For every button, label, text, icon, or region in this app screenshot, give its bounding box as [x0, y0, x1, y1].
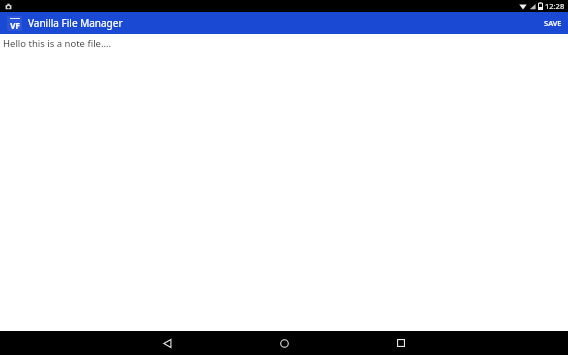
- button[interactable]: SAVE: [538, 12, 568, 34]
- staticText: Vanilla File Manager: [28, 16, 123, 30]
- staticText: VF: [10, 20, 20, 31]
- staticText: SAVE: [544, 18, 562, 28]
- button[interactable]: App icon: [7, 16, 22, 31]
- staticText: Hello this is a note file....: [3, 37, 112, 50]
- staticText: 12:28: [545, 1, 565, 11]
- button[interactable]: Recent apps: [389, 331, 413, 355]
- button[interactable]: Back: [155, 331, 179, 355]
- button[interactable]: Home: [272, 331, 296, 355]
